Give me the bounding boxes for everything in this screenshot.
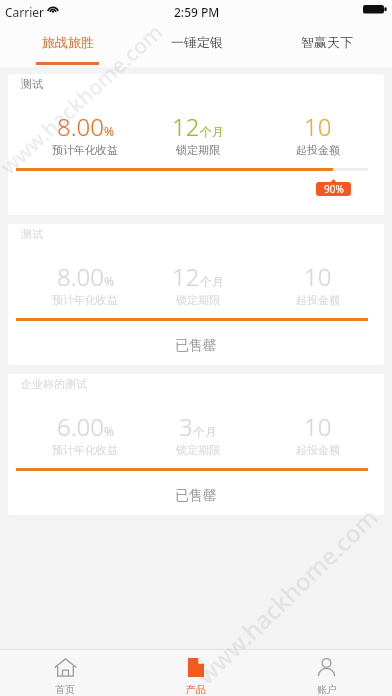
- staticText: Carrier: [5, 4, 45, 20]
- staticText: 12: [172, 260, 200, 293]
- other: Account: [316, 658, 337, 677]
- staticText: www.hackhome.com: [0, 18, 169, 181]
- other: Products: [188, 658, 204, 677]
- staticText: 首页: [55, 683, 75, 696]
- staticText: 企业标的测试: [21, 377, 87, 391]
- staticText: 智赢天下: [301, 34, 353, 50]
- staticText: 预计年化收益: [52, 443, 118, 457]
- staticText: 已售罄: [175, 337, 217, 355]
- staticText: 8.00: [57, 110, 104, 143]
- staticText: 锁定期限: [176, 143, 220, 157]
- staticText: 旅战旅胜: [42, 34, 94, 50]
- staticText: 起投金额: [296, 443, 340, 457]
- staticText: 起投金额: [296, 143, 340, 157]
- staticText: %: [104, 123, 114, 139]
- staticText: 10: [304, 410, 332, 443]
- staticText: 起投金额: [296, 293, 340, 307]
- staticText: 8.00: [57, 260, 104, 293]
- staticText: 锁定期限: [176, 293, 220, 307]
- staticText: 90%: [324, 182, 344, 196]
- staticText: www.hackhome.com: [189, 500, 385, 691]
- button[interactable]: Products: [130, 650, 261, 696]
- button[interactable]: 一锤定银: [132, 20, 262, 67]
- button[interactable]: 企业标的测试: [8, 374, 384, 515]
- staticText: 个月: [200, 274, 224, 289]
- staticText: 10: [304, 110, 332, 143]
- staticText: 已售罄: [175, 487, 217, 505]
- staticText: 测试: [21, 227, 43, 241]
- staticText: 产品: [186, 683, 206, 696]
- staticText: 账户: [317, 683, 337, 696]
- staticText: 12: [172, 110, 200, 143]
- staticText: %: [104, 423, 114, 439]
- staticText: 预计年化收益: [52, 143, 118, 157]
- staticText: 6.00: [57, 410, 104, 443]
- button[interactable]: 测试: [8, 74, 384, 215]
- staticText: 测试: [21, 77, 43, 91]
- button[interactable]: 智赢天下: [262, 20, 392, 67]
- other: Home: [54, 658, 77, 677]
- button[interactable]: 测试: [8, 224, 384, 365]
- button[interactable]: Home: [0, 650, 130, 696]
- staticText: %: [104, 273, 114, 289]
- staticText: 锁定期限: [176, 443, 220, 457]
- staticText: 个月: [200, 124, 224, 139]
- button[interactable]: 旅战旅胜: [3, 20, 132, 67]
- staticText: 预计年化收益: [52, 293, 118, 307]
- staticText: 2:59 PM: [174, 4, 220, 20]
- staticText: 一锤定银: [171, 34, 223, 50]
- staticText: 3: [179, 410, 193, 443]
- staticText: 个月: [193, 424, 217, 439]
- staticText: 10: [304, 260, 332, 293]
- button[interactable]: Account: [261, 650, 392, 696]
